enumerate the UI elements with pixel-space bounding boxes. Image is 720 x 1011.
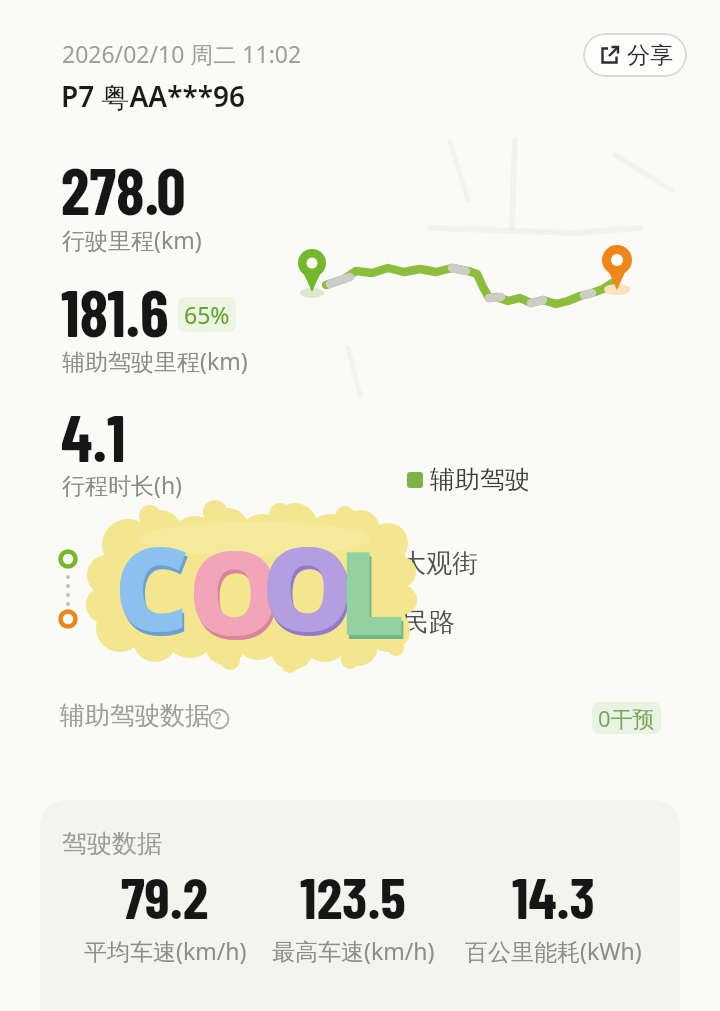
staticText: O bbox=[190, 515, 283, 673]
staticText: P7 粤AA***96 bbox=[61, 77, 246, 115]
staticText: 行驶里程(km) bbox=[62, 224, 202, 255]
staticText: 14.3 bbox=[512, 861, 595, 931]
staticText: 最高车速(km/h) bbox=[272, 935, 435, 966]
staticText: 滨海大道新民路 bbox=[273, 606, 455, 639]
staticText: 分享 bbox=[627, 41, 673, 70]
staticText: C bbox=[116, 511, 192, 669]
staticText: O bbox=[188, 511, 281, 669]
staticText: 辅助驾驶里程(km) bbox=[62, 345, 248, 376]
staticText: C bbox=[114, 507, 190, 665]
staticText: 辅助驾驶数据 bbox=[60, 700, 210, 731]
staticText: 百公里能耗(kWh) bbox=[465, 935, 642, 966]
staticText: L bbox=[340, 515, 408, 673]
staticText: L bbox=[338, 511, 406, 669]
staticText: 行程时长(h) bbox=[62, 469, 183, 500]
staticText: 278.0 bbox=[61, 150, 186, 228]
staticText: 辅助驾驶 bbox=[430, 464, 530, 495]
staticText: 平均车速(km/h) bbox=[84, 935, 247, 966]
staticText: O bbox=[261, 507, 354, 665]
staticText: 65% bbox=[184, 299, 230, 330]
staticText: 2026/02/10 周二 11:02 bbox=[62, 38, 302, 69]
staticText: 驾驶数据 bbox=[62, 828, 162, 859]
staticText: 123.5 bbox=[300, 861, 406, 931]
staticText: 4.1 bbox=[61, 397, 126, 475]
staticText: 181.6 bbox=[61, 272, 169, 350]
staticText: O bbox=[263, 511, 356, 669]
button[interactable]: 分享 bbox=[583, 33, 687, 77]
button[interactable]: 0干预 bbox=[592, 702, 661, 734]
staticText: 科苑路首大观街 bbox=[296, 547, 478, 580]
staticText: 0干预 bbox=[598, 703, 655, 733]
staticText: 79.2 bbox=[121, 861, 209, 931]
staticText: ? bbox=[214, 707, 221, 729]
